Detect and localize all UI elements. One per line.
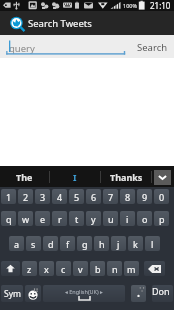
staticText: 4 [57,191,63,203]
staticText: x [44,263,49,275]
button[interactable]: Emoji [25,285,41,302]
staticText: j [117,238,120,250]
button[interactable]: Shift [1,261,20,276]
staticText: o [142,213,148,225]
staticText: h [99,238,105,250]
button[interactable]: w [18,211,33,226]
button[interactable]: i [120,211,135,226]
staticText: query [9,42,35,55]
staticText: 2 [23,191,29,203]
button[interactable]: n [107,261,122,276]
staticText: w [22,213,30,225]
staticText: g [82,238,88,250]
staticText: d [48,238,54,250]
staticText: e [40,213,46,225]
button[interactable]: 2 [18,189,33,204]
button[interactable]: b [90,261,105,276]
button[interactable]: p [154,211,169,226]
staticText: p [159,213,165,225]
button[interactable]: 4 [52,189,67,204]
staticText: n [112,263,118,275]
staticText: 6 [91,191,97,203]
button[interactable]: r [52,211,67,226]
button[interactable]: z [22,261,37,276]
staticText: 7 [108,191,114,203]
button[interactable]: 3 [35,189,50,204]
staticText: q [6,213,12,225]
button[interactable]: y [86,211,101,226]
button[interactable]: Search query field [0,35,126,58]
staticText: 1 [6,191,12,203]
staticText: b [95,263,101,275]
button[interactable]: 6 [86,189,101,204]
button[interactable]: The [0,166,49,187]
button[interactable]: Sym [1,285,23,302]
staticText: k [133,238,138,250]
button[interactable]: Space [43,285,125,302]
staticText: 8 [125,191,131,203]
staticText: z [27,263,32,275]
staticText: v [78,263,83,275]
button[interactable]: Expand suggestions [154,170,171,185]
staticText: ◂ English(UK) ▸ [65,288,103,295]
button[interactable]: x [39,261,54,276]
button[interactable]: f [60,236,75,251]
button[interactable]: c [56,261,71,276]
button[interactable]: g [77,236,92,251]
button[interactable]: m [124,261,139,276]
button[interactable]: Period [131,285,146,302]
staticText: 3 [40,191,46,203]
button[interactable]: o [137,211,152,226]
staticText: m [127,263,136,275]
staticText: f [66,238,70,250]
button[interactable]: s [26,236,41,251]
button[interactable]: 5 [69,189,84,204]
button[interactable]: Done [152,285,173,302]
staticText: Sym [4,288,21,300]
button[interactable]: 8 [120,189,135,204]
staticText: r [58,213,62,225]
button[interactable]: h [94,236,109,251]
staticText: 9 [142,191,148,203]
button[interactable]: 0 [154,189,169,204]
button[interactable]: Thanks [101,166,151,187]
button[interactable]: e [35,211,50,226]
button[interactable]: I [50,166,100,187]
button[interactable]: Search [137,35,174,58]
staticText: I [73,171,77,183]
staticText: Search [137,41,168,54]
staticText: t [75,213,79,225]
button[interactable]: q [1,211,16,226]
staticText: l [151,238,154,250]
button[interactable]: j [111,236,126,251]
staticText: Done [152,285,173,302]
staticText: i [126,213,129,225]
button[interactable]: v [73,261,88,276]
staticText: s [31,238,36,250]
button[interactable]: 1 [1,189,16,204]
button[interactable]: d [43,236,58,251]
staticText: The [16,171,33,183]
staticText: 100% [123,2,138,9]
button[interactable]: t [69,211,84,226]
button[interactable]: 7 [103,189,118,204]
staticText: y [91,213,96,225]
staticText: 5 [74,191,80,203]
staticText: u [108,213,114,225]
button[interactable]: u [103,211,118,226]
button[interactable]: k [128,236,143,251]
staticText: 0 [159,191,165,203]
button[interactable]: a [9,236,24,251]
button[interactable]: l [145,236,160,251]
button[interactable]: Backspace [144,261,165,276]
staticText: Search Tweets [28,17,92,30]
staticText: a [14,238,20,250]
button[interactable]: 9 [137,189,152,204]
staticText: c [61,263,66,275]
staticText: 21:10 [150,0,171,11]
staticText: Thanks [110,171,143,183]
